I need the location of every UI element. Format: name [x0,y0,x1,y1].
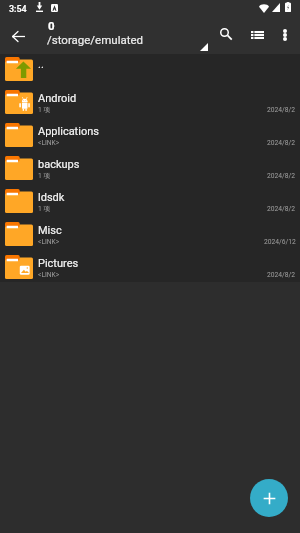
staticText: Misc [38,224,62,237]
button[interactable]: Applications [0,120,300,153]
staticText: 2024/8/2 [267,205,296,213]
button[interactable]: ldsdk [0,186,300,219]
button[interactable]: Misc [0,219,300,252]
button[interactable]: Add [250,479,288,517]
staticText: 2024/8/2 [267,271,296,279]
staticText: 2024/6/12 [264,238,296,246]
staticText: 1 项 [38,205,51,213]
button[interactable]: More options [271,21,296,51]
staticText: Pictures [38,257,79,270]
button[interactable]: Pictures [0,252,300,282]
staticText: Android [38,92,77,105]
staticText: backups [38,158,80,171]
button[interactable]: .. [0,54,300,87]
button[interactable]: Back [6,24,31,49]
staticText: 3:54 [9,4,27,15]
staticText: 0 [48,19,55,32]
button[interactable]: backups [0,153,300,186]
staticText: 1 项 [38,172,51,180]
staticText: <LINK> [38,238,60,246]
staticText: <LINK> [38,271,60,279]
staticText: /storage/emulated [47,33,144,46]
staticText: <LINK> [38,139,60,147]
staticText: ldsdk [38,191,65,204]
staticText: 1 项 [38,106,51,114]
staticText: 2024/8/2 [267,139,296,147]
staticText: .. [38,58,44,71]
button[interactable]: Search [213,21,238,51]
button[interactable]: View mode [244,21,269,51]
staticText: Applications [38,125,99,138]
staticText: 2024/8/2 [267,106,296,114]
staticText: 2024/8/2 [267,172,296,180]
button[interactable]: Android [0,87,300,120]
